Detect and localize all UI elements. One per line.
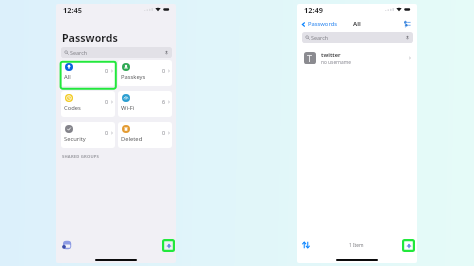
staticText: Deleted <box>121 135 143 143</box>
staticText: no username <box>321 59 351 66</box>
staticText: 0 <box>162 67 166 74</box>
button[interactable]: Sort <box>302 241 310 249</box>
staticText: 0 <box>105 129 109 136</box>
button[interactable]: T <box>297 48 417 68</box>
staticText: 0 <box>105 98 109 105</box>
staticText: Security <box>64 135 86 143</box>
button[interactable]: Add password <box>402 239 415 252</box>
button[interactable]: Search <box>302 32 413 43</box>
button[interactable]: 6 <box>118 91 172 117</box>
staticText: 0 <box>105 67 109 74</box>
staticText: 1 Item <box>349 242 364 249</box>
staticText: Passkeys <box>121 73 146 81</box>
staticText: Codes <box>64 104 81 112</box>
button[interactable]: Add password <box>162 239 175 252</box>
button[interactable]: Passwords <box>300 19 338 29</box>
staticText: 12:49 <box>304 5 323 15</box>
button[interactable]: 0 <box>118 122 172 148</box>
staticText: All <box>64 73 71 81</box>
staticText: 0 <box>162 129 166 136</box>
staticText: T <box>307 52 313 64</box>
staticText: Search <box>70 49 88 56</box>
button[interactable]: Sort and filter <box>403 20 411 28</box>
staticText: All <box>353 20 361 28</box>
staticText: Passwords <box>62 31 118 45</box>
staticText: Search <box>311 34 329 41</box>
button[interactable]: 0 <box>61 122 115 148</box>
button[interactable]: 0 <box>61 91 115 117</box>
staticText: Wi-Fi <box>121 104 135 112</box>
button[interactable]: 0 <box>61 60 115 86</box>
staticText: SHARED GROUPS <box>62 154 100 160</box>
staticText: 6 <box>162 98 166 105</box>
button[interactable]: Shared passwords <box>62 240 72 250</box>
button[interactable]: Search <box>61 47 172 58</box>
staticText: Passwords <box>308 20 337 28</box>
staticText: 12:45 <box>63 5 82 15</box>
button[interactable]: 0 <box>118 60 172 86</box>
staticText: twitter <box>321 51 341 59</box>
